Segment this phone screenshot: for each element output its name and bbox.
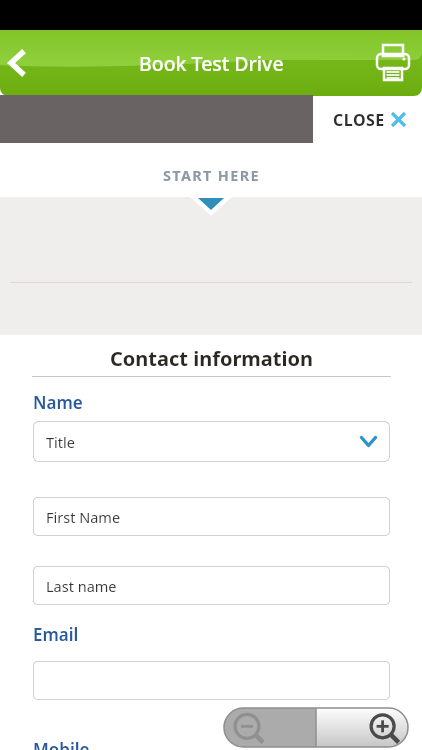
staticText: START HERE	[163, 165, 260, 185]
button[interactable]	[364, 30, 422, 96]
button[interactable]	[316, 708, 408, 747]
button[interactable]	[33, 661, 390, 700]
button[interactable]: Last name	[33, 566, 390, 605]
staticText: Book Test Drive	[139, 50, 284, 77]
button[interactable]	[0, 30, 32, 96]
button[interactable]: Title	[33, 421, 390, 462]
button[interactable]	[224, 708, 316, 747]
staticText: Email	[33, 623, 79, 646]
staticText: Mobile	[33, 738, 90, 750]
button[interactable]: First Name	[33, 497, 390, 536]
staticText: Title	[46, 432, 75, 452]
staticText: Name	[33, 391, 83, 414]
staticText: CLOSE	[333, 109, 385, 131]
button[interactable]: CLOSE	[320, 96, 422, 143]
staticText: Last name	[46, 576, 117, 596]
staticText: Contact information	[110, 345, 313, 372]
staticText: First Name	[46, 507, 121, 527]
